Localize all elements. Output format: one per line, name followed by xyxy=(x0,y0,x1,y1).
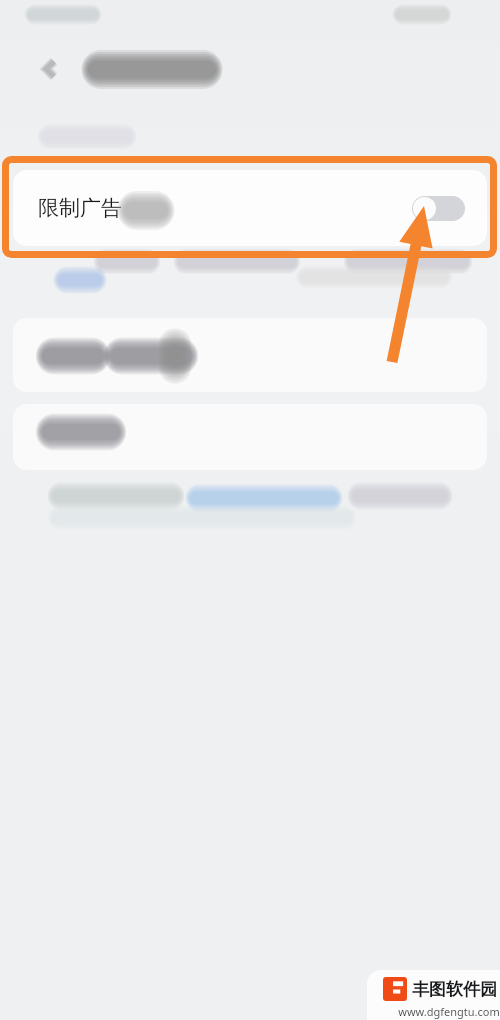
staticText: www.dgfengtu.com xyxy=(398,1004,500,1019)
staticText: 限制广告 xyxy=(38,195,122,221)
button[interactable] xyxy=(13,318,487,392)
button[interactable] xyxy=(13,404,487,470)
button[interactable]: Back xyxy=(30,48,72,90)
staticText: 丰图软件园 xyxy=(412,979,497,1000)
button[interactable]: 限制广告 xyxy=(13,170,487,246)
button[interactable]: Limit ads toggle xyxy=(412,196,465,221)
